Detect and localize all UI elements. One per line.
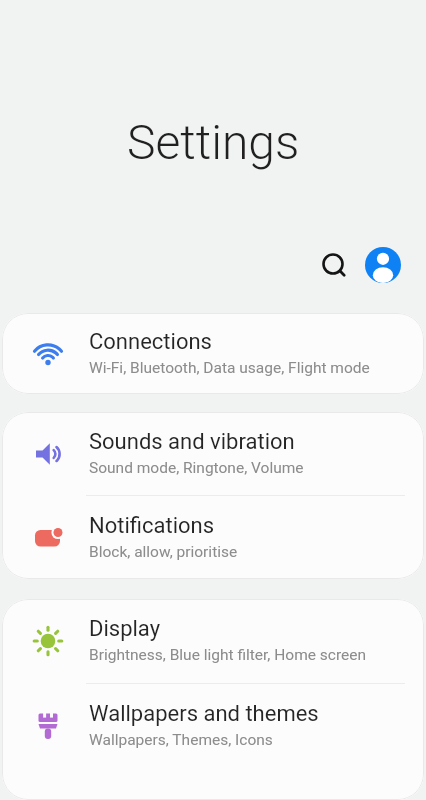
button[interactable] — [313, 245, 353, 285]
button[interactable]: Sounds and vibration — [2, 412, 424, 495]
staticText: Wallpapers and themes — [89, 701, 319, 727]
button[interactable] — [365, 247, 401, 283]
staticText: Wi-Fi, Bluetooth, Data usage, Flight mod… — [89, 359, 370, 377]
button[interactable]: Notifications — [2, 496, 424, 579]
staticText: Block, allow, prioritise — [89, 543, 238, 561]
staticText: Display — [89, 616, 161, 642]
button[interactable]: Connections — [2, 313, 424, 394]
staticText: Wallpapers, Themes, Icons — [89, 731, 273, 749]
button[interactable]: Wallpapers and themes — [2, 684, 424, 768]
staticText: Connections — [89, 329, 212, 355]
staticText: Notifications — [89, 513, 215, 539]
staticText: Sound mode, Ringtone, Volume — [89, 459, 304, 477]
staticText: Sounds and vibration — [89, 429, 295, 455]
button[interactable]: Display — [2, 599, 424, 683]
staticText: Brightness, Blue light filter, Home scre… — [89, 646, 367, 664]
staticText: Settings — [127, 114, 300, 170]
